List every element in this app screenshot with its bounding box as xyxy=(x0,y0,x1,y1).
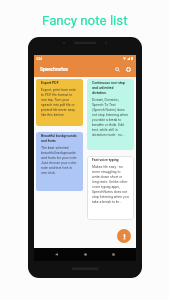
staticText: Fancy note list xyxy=(42,13,128,29)
staticText: The best selected beautiful backgrounds … xyxy=(41,146,78,175)
button[interactable]: Fast voice typing xyxy=(87,156,134,220)
button[interactable]: Settings xyxy=(123,64,134,75)
button[interactable]: Home xyxy=(80,249,91,260)
staticText: Continuous non-stop and unlimited dictat… xyxy=(92,81,129,95)
staticText: Beautiful backgrounds and fonts xyxy=(41,134,78,143)
staticText: Export PDF xyxy=(41,81,59,85)
button[interactable]: Continuous non-stop and unlimited dictat… xyxy=(87,79,134,150)
staticText: Makes life easy - no more struggling to … xyxy=(92,165,129,204)
button[interactable]: Search xyxy=(112,64,123,75)
staticText: 4:34 xyxy=(36,57,42,61)
button[interactable]: Back xyxy=(51,249,62,260)
staticText: Dictate, Dictation, Speech To Text (Spee… xyxy=(92,98,129,137)
staticText: Fast voice typing xyxy=(92,158,119,162)
button[interactable]: Beautiful backgrounds and fonts xyxy=(36,132,83,191)
staticText: Export, print from note to PDF file form… xyxy=(41,88,78,117)
button[interactable]: Export PDF xyxy=(36,79,83,126)
staticText: Speechnotes xyxy=(40,67,68,73)
button[interactable]: Recents xyxy=(108,249,119,260)
button[interactable]: Record xyxy=(117,229,131,243)
